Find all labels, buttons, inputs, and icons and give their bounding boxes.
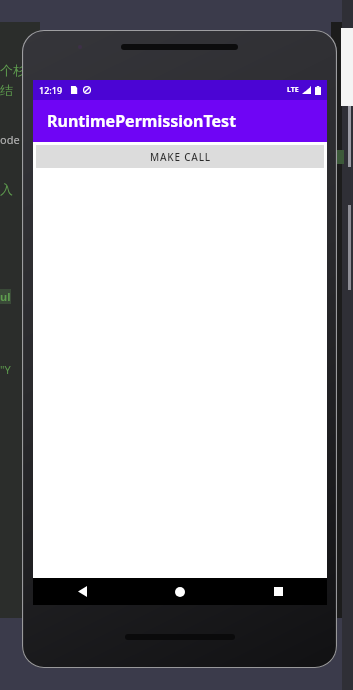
staticText: 入 [0, 181, 13, 197]
staticText: 个杉 [0, 62, 26, 78]
button[interactable]: MAKE CALL [36, 145, 324, 168]
staticText: MAKE CALL [150, 150, 211, 164]
staticText: 结 [0, 82, 13, 98]
staticText: "Y [0, 362, 11, 377]
button[interactable]: Back [33, 578, 131, 605]
staticText: ode [0, 132, 20, 147]
staticText: LTE [287, 85, 299, 95]
button[interactable]: Home [131, 578, 229, 605]
button[interactable]: Recent apps [229, 578, 327, 605]
staticText: 12:19 [39, 84, 63, 96]
staticText: ul [0, 289, 11, 304]
staticText: RuntimePermissionTest [47, 110, 237, 132]
